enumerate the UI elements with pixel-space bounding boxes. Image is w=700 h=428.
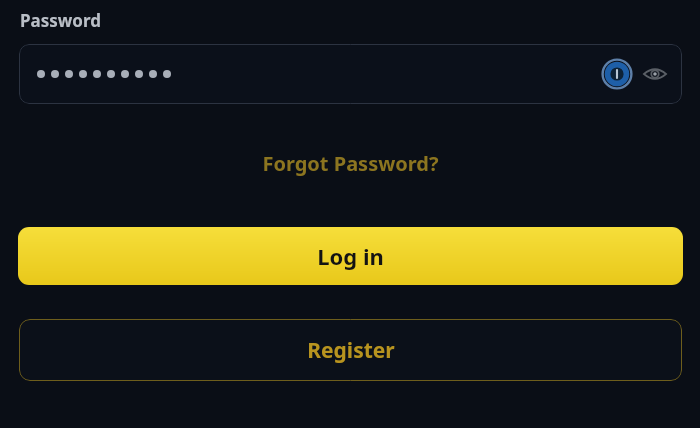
- staticText: Register: [307, 336, 395, 365]
- button[interactable]: Forgot Password?: [0, 150, 700, 177]
- button[interactable]: Show password: [640, 59, 670, 89]
- staticText: Log in: [317, 241, 384, 271]
- button[interactable]: Log in: [18, 227, 683, 285]
- staticText: Password: [20, 9, 101, 32]
- button[interactable]: Register: [19, 319, 682, 381]
- staticText: Forgot Password?: [262, 150, 439, 177]
- button[interactable]: Password manager: [19, 44, 682, 104]
- button[interactable]: Password manager: [600, 57, 634, 91]
